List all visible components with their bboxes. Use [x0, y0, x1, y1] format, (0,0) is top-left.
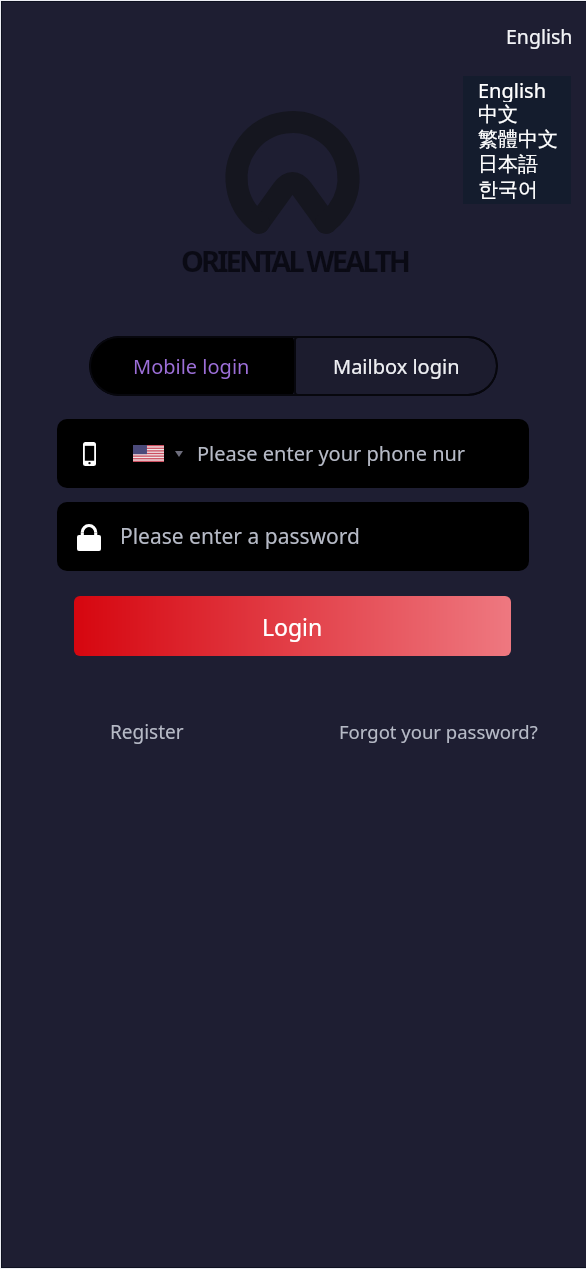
staticText: 中文	[478, 102, 518, 127]
button[interactable]: Mobile login	[89, 336, 294, 396]
staticText: Mobile login	[133, 353, 250, 380]
staticText: Please enter your phone nur	[197, 440, 466, 467]
button[interactable]: 日本語	[478, 152, 571, 177]
staticText: 繁體中文	[478, 127, 558, 152]
other: Password	[77, 523, 101, 551]
staticText: English	[478, 77, 547, 102]
button[interactable]: Login	[74, 596, 511, 656]
button[interactable]: Select country code	[128, 437, 188, 470]
button[interactable]: Mobile number	[57, 419, 529, 488]
staticText: 한국어	[478, 177, 538, 202]
button[interactable]: Mailbox login	[294, 336, 498, 396]
staticText: 日本語	[478, 152, 538, 177]
staticText: Please enter a password	[120, 522, 360, 551]
staticText: Register	[110, 719, 184, 745]
staticText: ORIENTAL WEALTH	[181, 241, 408, 280]
button[interactable]: Register	[100, 711, 194, 753]
staticText: Mailbox login	[333, 353, 460, 380]
button[interactable]: English	[478, 77, 571, 102]
button[interactable]: 繁體中文	[478, 127, 571, 152]
button[interactable]: 中文	[478, 102, 571, 127]
other: Mobile number	[83, 442, 96, 466]
staticText: English	[506, 23, 573, 50]
button[interactable]: Forgot your password?	[329, 711, 548, 752]
other: Oriental Wealth logo	[225, 110, 360, 238]
staticText: Forgot your password?	[339, 719, 538, 744]
button[interactable]: 한국어	[478, 177, 571, 202]
staticText: Login	[262, 611, 323, 642]
button[interactable]: Password	[57, 502, 529, 571]
button[interactable]: English	[500, 19, 579, 54]
